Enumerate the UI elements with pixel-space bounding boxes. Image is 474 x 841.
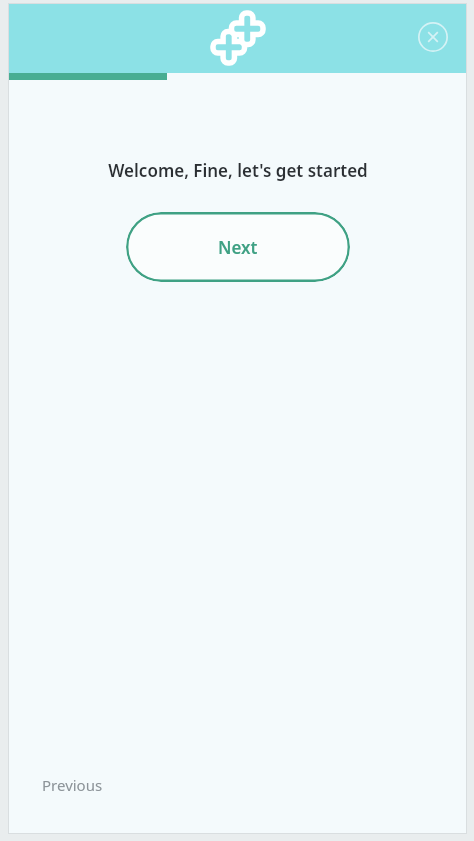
staticText: Welcome, Fine, let's get started <box>108 159 368 182</box>
staticText: Previous <box>42 775 103 795</box>
staticText: Next <box>218 236 258 259</box>
button[interactable]: App logo <box>213 13 263 63</box>
button[interactable]: Close <box>413 17 453 57</box>
button[interactable]: Previous <box>29 769 116 801</box>
button[interactable]: Next <box>126 212 350 282</box>
